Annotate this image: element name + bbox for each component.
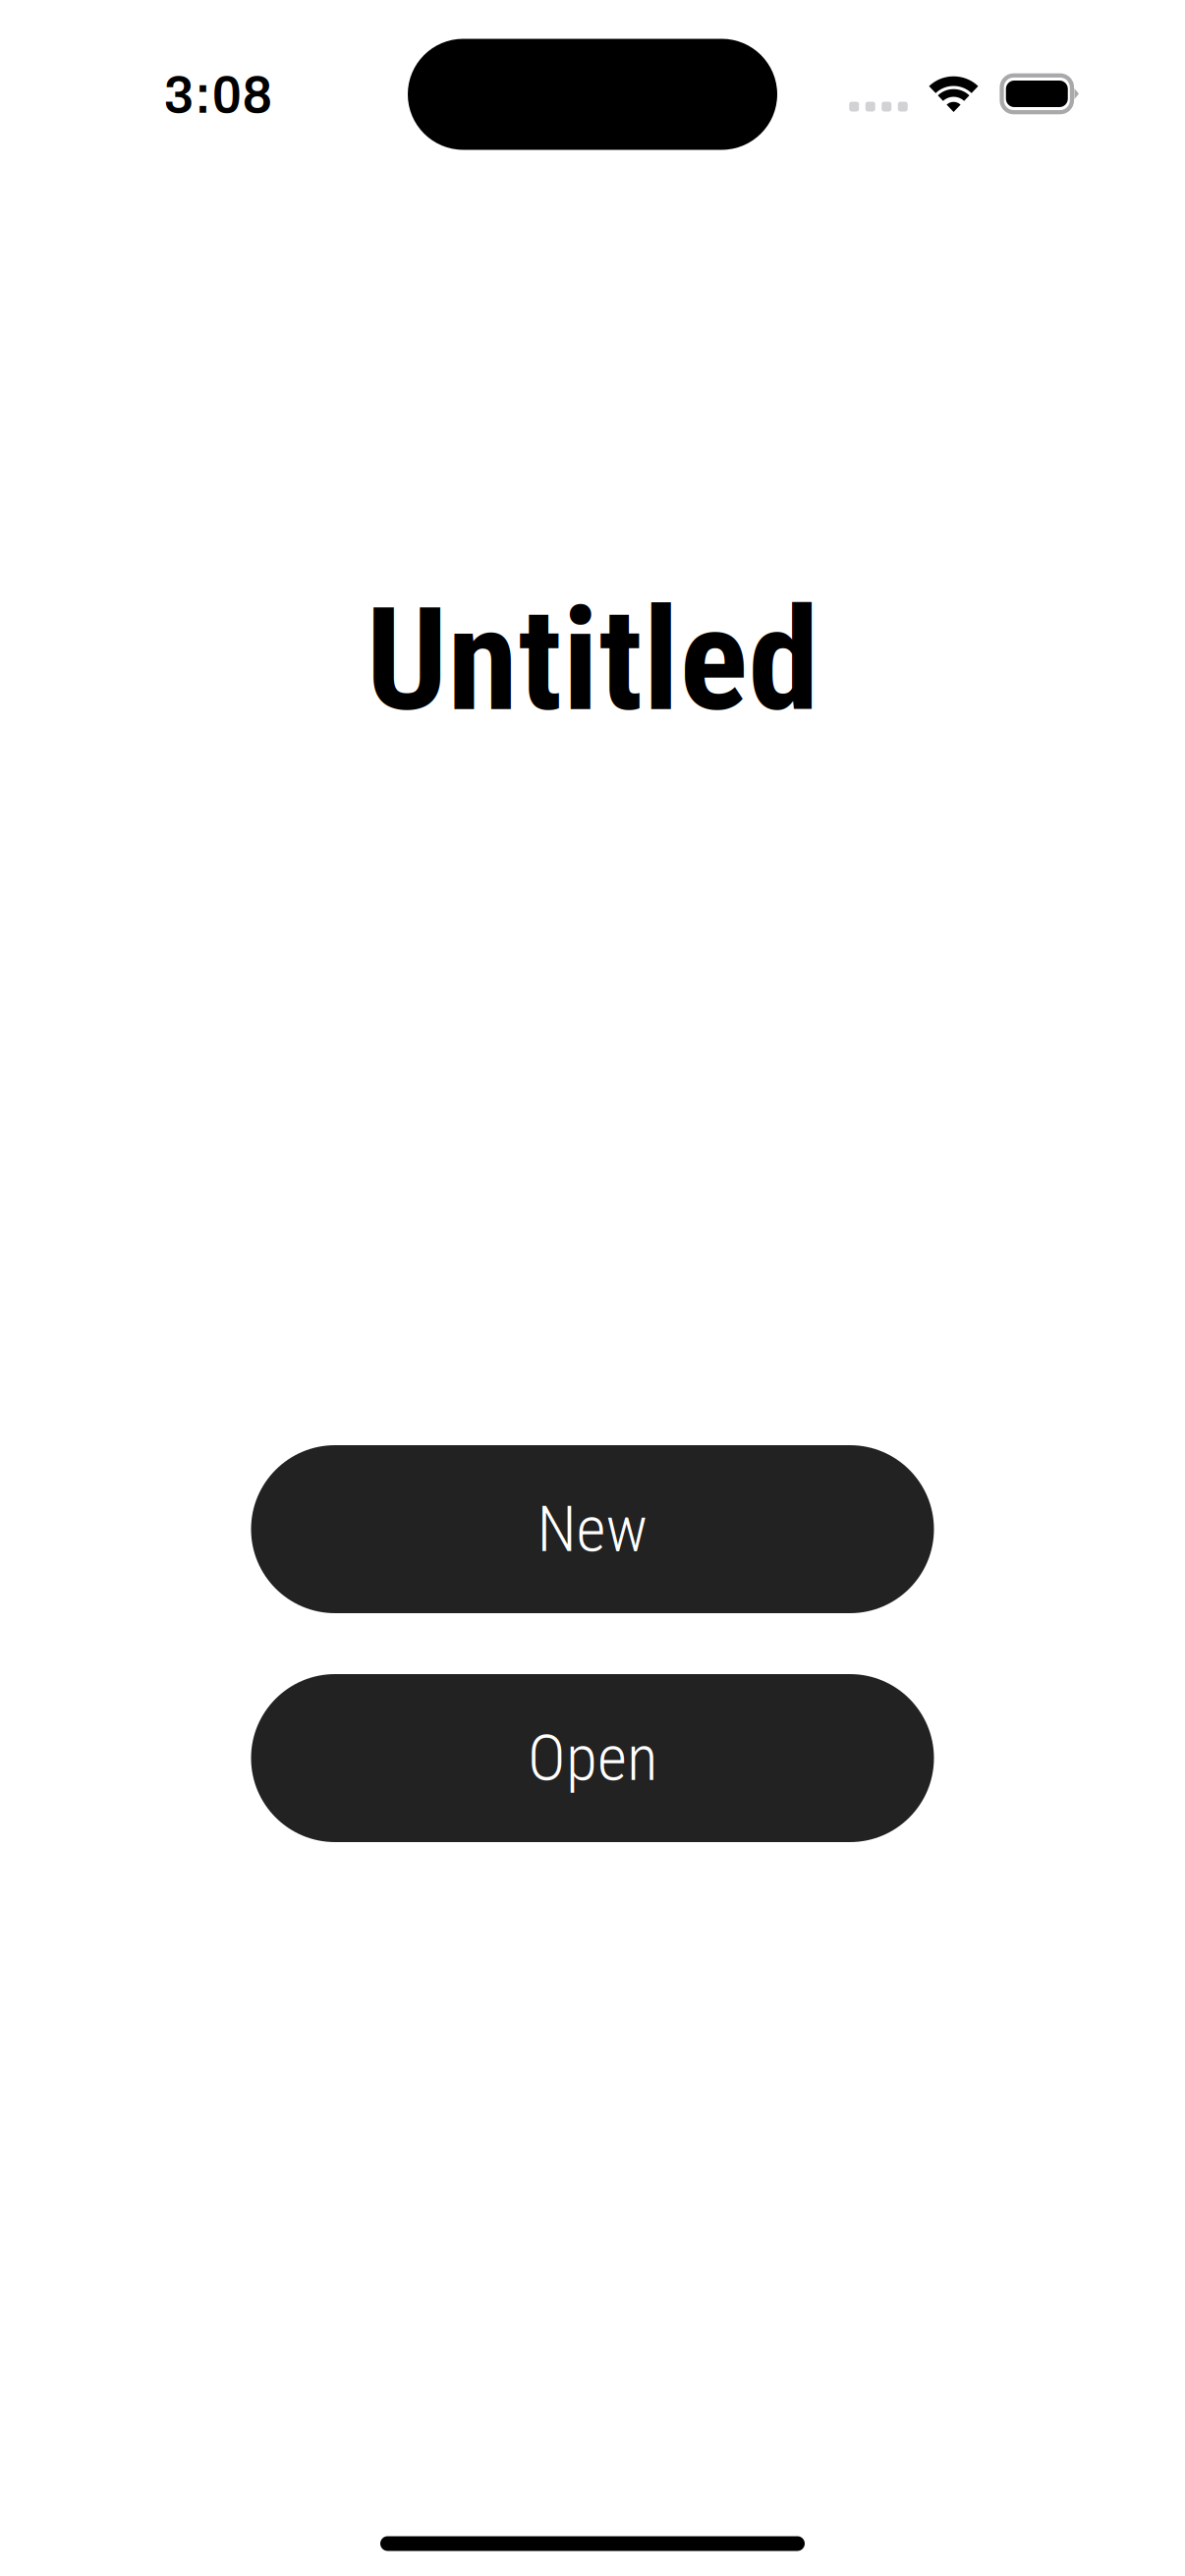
button[interactable]: Open [251,1674,934,1842]
staticText: Untitled [366,577,819,744]
button[interactable]: New [251,1445,934,1613]
staticText: 3:08 [164,67,273,124]
staticText: Open [528,1720,657,1796]
staticText: New [537,1492,648,1567]
